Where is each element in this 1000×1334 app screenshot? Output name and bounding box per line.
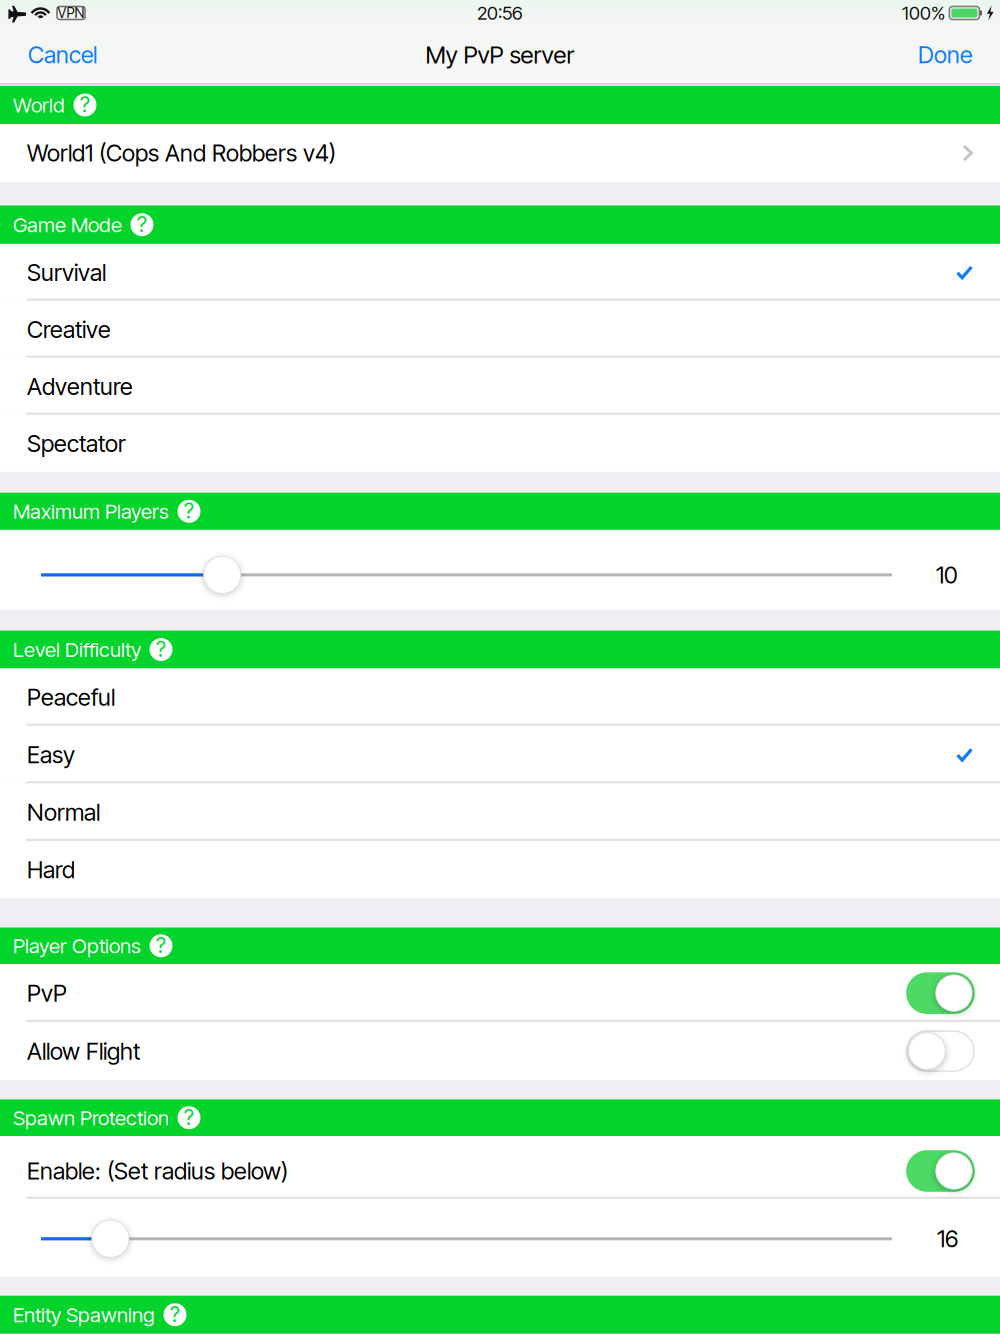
staticText: 10 [936,561,958,589]
button[interactable]: Easy [0,726,1000,783]
staticText: Normal [27,798,100,826]
staticText: 16 [937,1225,958,1253]
button[interactable]: Peaceful [0,668,1000,726]
button[interactable]: Survival [0,244,1000,301]
staticText: ? [184,498,194,524]
staticText: Spectator [27,429,126,458]
staticText: Hard [27,856,75,884]
staticText: Done [918,41,972,69]
staticText: ? [170,1301,180,1327]
button[interactable]: World1 (Cops And Robbers v4) [0,124,1000,182]
staticText: Cancel [28,41,97,69]
staticText: Enable: (Set radius below) [27,1157,288,1185]
staticText: Player Options [13,933,141,958]
button[interactable]: Spectator [0,415,1000,472]
button[interactable]: Hard [0,841,1000,898]
staticText: Easy [27,741,75,769]
button[interactable]: Adventure [0,358,1000,415]
staticText: Peaceful [27,683,115,711]
staticText: Creative [27,315,111,344]
staticText: ? [156,932,166,958]
staticText: PvP [27,979,67,1007]
button[interactable]: Normal [0,783,1000,841]
staticText: Game Mode [13,212,122,237]
staticText: Adventure [27,372,133,401]
staticText: 100% [902,2,945,24]
button[interactable]: Cancel [16,28,109,82]
button[interactable]: Allow Flight [0,1022,1000,1080]
button[interactable]: Done [906,28,984,82]
staticText: Allow Flight [27,1037,140,1065]
button[interactable]: Creative [0,301,1000,358]
staticText: ? [80,92,90,117]
staticText: 20:56 [477,2,523,24]
staticText: My PvP server [425,40,574,69]
staticText: ? [156,636,166,662]
staticText: World [13,93,65,117]
staticText: VPN [57,4,84,21]
staticText: ? [184,1104,194,1130]
staticText: Spawn Protection [13,1105,169,1130]
button[interactable]: Enable: (Set radius below) [0,1136,1000,1199]
staticText: ? [137,211,147,237]
staticText: Survival [27,258,106,287]
staticText: Maximum Players [13,499,169,524]
staticText: Entity Spawning [13,1302,155,1327]
staticText: Level Difficulty [13,637,141,662]
button[interactable]: PvP [0,964,1000,1022]
staticText: World1 (Cops And Robbers v4) [27,139,336,167]
